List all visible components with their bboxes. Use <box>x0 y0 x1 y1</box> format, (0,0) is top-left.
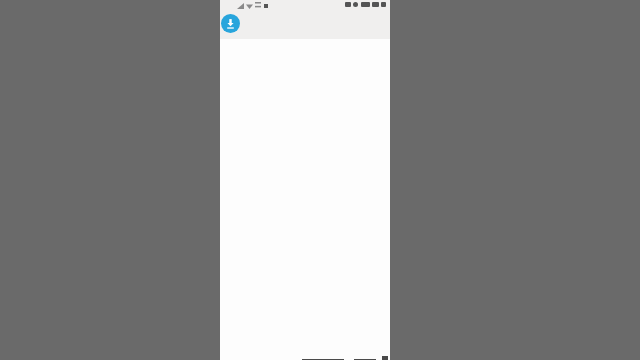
button[interactable]: Download <box>221 14 240 33</box>
